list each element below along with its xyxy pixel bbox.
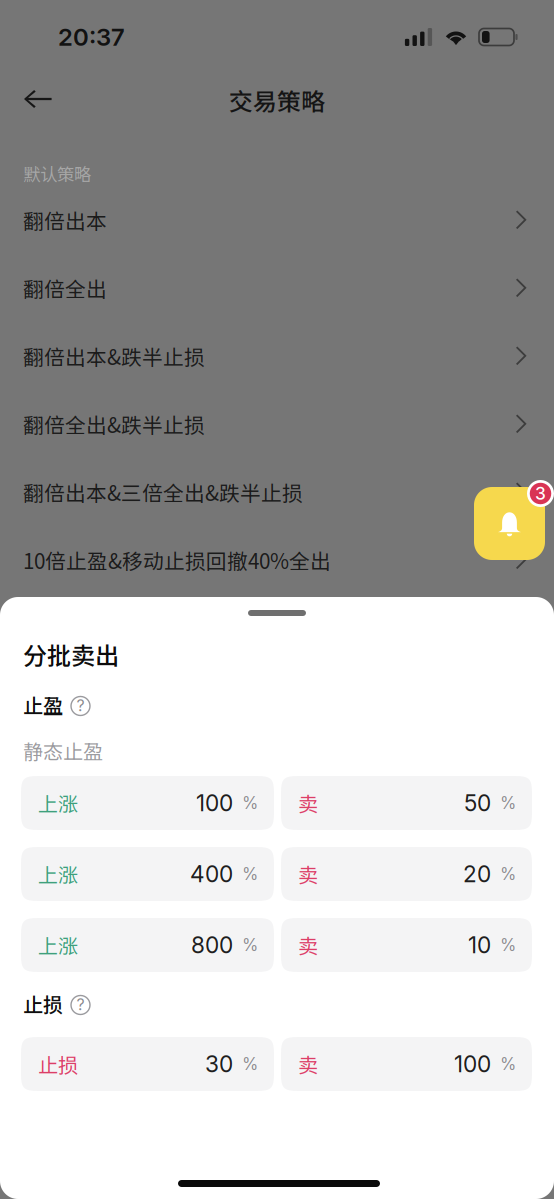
staticText: ?	[76, 995, 84, 1014]
button[interactable]: 卖	[281, 918, 532, 972]
staticText: 3	[535, 483, 546, 504]
button[interactable]: 卖	[281, 1037, 532, 1091]
staticText: 10倍止盈&移动止损回撤40%全出	[23, 545, 331, 575]
staticText: 默认策略	[23, 161, 91, 186]
staticText: 上涨	[38, 930, 78, 959]
staticText: 50	[464, 789, 491, 817]
button[interactable]: 止损	[21, 1037, 274, 1091]
button[interactable]: 翻倍全出&跌半止损	[0, 390, 554, 458]
staticText: 翻倍出本&跌半止损	[23, 341, 205, 371]
button[interactable]: 上涨	[21, 918, 274, 972]
staticText: 上涨	[38, 788, 78, 817]
staticText: 交易策略	[229, 83, 325, 117]
button[interactable]: 翻倍出本&三倍全出&跌半止损	[0, 458, 554, 526]
staticText: 100	[196, 789, 233, 817]
staticText: 静态止盈	[23, 736, 103, 765]
staticText: %	[500, 864, 516, 884]
staticText: %	[242, 935, 258, 955]
staticText: %	[242, 793, 258, 813]
staticText: 止盈	[23, 690, 63, 719]
staticText: 上涨	[38, 859, 78, 888]
button[interactable]: Notifications	[474, 487, 545, 560]
staticText: 卖	[298, 859, 318, 888]
staticText: 翻倍全出	[23, 273, 107, 303]
button[interactable]: Back	[15, 76, 61, 122]
staticText: %	[500, 1054, 516, 1074]
staticText: %	[500, 793, 516, 813]
staticText: 20	[463, 860, 491, 888]
staticText: 100	[454, 1050, 491, 1078]
staticText: 20:37	[58, 22, 125, 51]
staticText: 30	[205, 1050, 233, 1078]
staticText: 卖	[298, 930, 318, 959]
staticText: 卖	[298, 1049, 318, 1078]
button[interactable]: 翻倍全出	[0, 254, 554, 322]
button[interactable]: 上涨	[21, 776, 274, 830]
button[interactable]: 上涨	[21, 847, 274, 901]
button[interactable]: 翻倍出本&跌半止损	[0, 322, 554, 390]
staticText: 800	[191, 931, 233, 959]
staticText: 止损	[38, 1049, 78, 1078]
staticText: ?	[76, 696, 84, 715]
staticText: 分批卖出	[23, 637, 119, 672]
staticText: 翻倍出本&三倍全出&跌半止损	[23, 477, 303, 507]
staticText: 止损	[23, 989, 63, 1018]
button[interactable]: 翻倍出本	[0, 186, 554, 254]
staticText: %	[500, 935, 516, 955]
button[interactable]: 10倍止盈&移动止损回撤40%全出	[0, 526, 554, 594]
button[interactable]: 卖	[281, 776, 532, 830]
staticText: 翻倍全出&跌半止损	[23, 409, 205, 439]
staticText: %	[242, 864, 258, 884]
staticText: 卖	[298, 788, 318, 817]
button[interactable]: 卖	[281, 847, 532, 901]
staticText: 400	[190, 860, 233, 888]
staticText: %	[242, 1054, 258, 1074]
staticText: 翻倍出本	[23, 205, 107, 235]
staticText: 10	[468, 931, 491, 959]
